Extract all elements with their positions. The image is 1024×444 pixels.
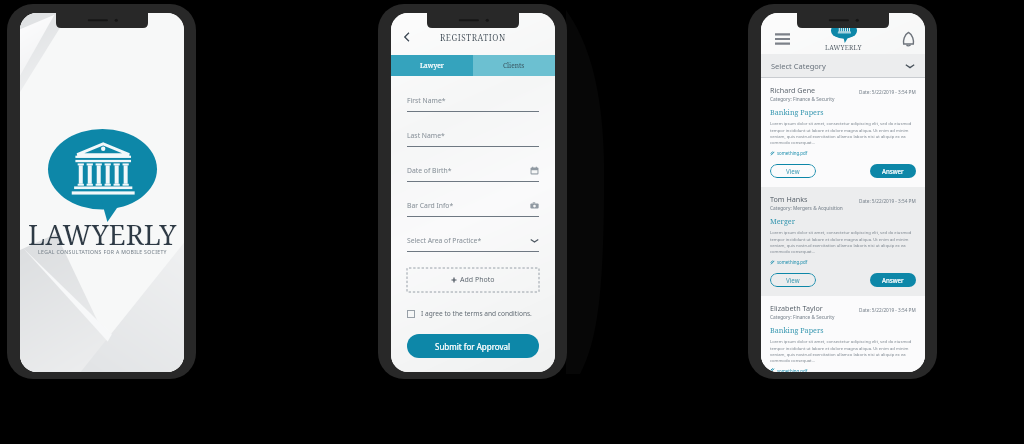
- staticText: Clients: [503, 61, 525, 70]
- button[interactable]: I agree to the terms and conditions.: [407, 309, 539, 318]
- staticText: REGISTRATION: [440, 32, 506, 43]
- staticText: Banking Papers: [770, 107, 824, 117]
- button[interactable]: Select Category: [771, 54, 915, 77]
- staticText: Last Name*: [407, 131, 539, 140]
- staticText: Category: Mergers & Acquisition: [770, 205, 843, 212]
- staticText: Date of Birth*: [407, 166, 530, 175]
- staticText: View: [786, 276, 800, 284]
- staticText: Lorem ipsum dolor sit amet, consectetur …: [770, 339, 916, 363]
- staticText: Date: 5/22/2019 - 3:54 PM: [859, 89, 916, 95]
- staticText: something.pdf: [777, 259, 808, 265]
- staticText: Select Area of Practice*: [407, 236, 530, 245]
- staticText: First Name*: [407, 96, 539, 105]
- staticText: something.pdf: [777, 150, 808, 156]
- staticText: LAWYERLY: [825, 43, 862, 52]
- staticText: Date: 5/22/2019 - 3:54 PM: [859, 198, 916, 204]
- button[interactable]: Submit for Approval: [407, 334, 539, 358]
- button[interactable]: Back: [400, 30, 414, 44]
- staticText: Merger: [770, 216, 796, 226]
- staticText: LAWYERLY: [28, 216, 177, 253]
- staticText: Answer: [882, 276, 904, 284]
- button[interactable]: Add Photo: [407, 268, 539, 292]
- button[interactable]: Answer: [870, 273, 916, 287]
- staticText: Lorem ipsum dolor sit amet, consectetur …: [770, 230, 916, 254]
- staticText: I agree to the terms and conditions.: [421, 309, 532, 318]
- staticText: Category: Finance & Security: [770, 96, 835, 103]
- button[interactable]: Menu: [775, 33, 790, 45]
- staticText: Bar Card Info*: [407, 201, 530, 210]
- button[interactable]: View: [770, 273, 816, 287]
- staticText: Richard Gene: [770, 85, 859, 95]
- staticText: Lawyer: [420, 61, 444, 70]
- staticText: Tom Hanks: [770, 194, 859, 204]
- button[interactable]: Notifications: [903, 32, 914, 46]
- staticText: Banking Papers: [770, 325, 824, 335]
- staticText: Elizabeth Taylor: [770, 303, 859, 313]
- staticText: Date: 5/22/2019 - 3:54 PM: [859, 307, 916, 313]
- staticText: Category: Finance & Security: [770, 314, 835, 321]
- staticText: Lorem ipsum dolor sit amet, consectetur …: [770, 121, 916, 145]
- button[interactable]: Answer: [870, 164, 916, 178]
- button[interactable]: Clients: [473, 55, 555, 76]
- staticText: Submit for Approval: [435, 341, 511, 352]
- staticText: something.pdf: [777, 368, 808, 372]
- staticText: Select Category: [771, 61, 905, 71]
- staticText: Add Photo: [460, 275, 495, 285]
- staticText: Answer: [882, 167, 904, 175]
- button[interactable]: Lawyer: [391, 55, 473, 76]
- staticText: View: [786, 167, 800, 175]
- staticText: LEGAL CONSULTATIONS FOR A MOBILE SOCIETY: [38, 249, 167, 256]
- button[interactable]: View: [770, 164, 816, 178]
